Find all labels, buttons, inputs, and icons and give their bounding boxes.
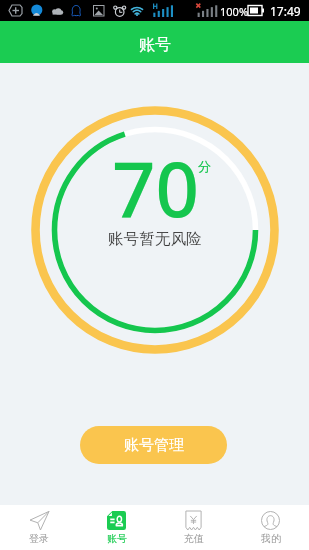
- other: Account: [107, 511, 126, 530]
- button[interactable]: Top up: [155, 505, 232, 550]
- staticText: 账号管理: [124, 436, 184, 455]
- staticText: 充值: [184, 532, 204, 545]
- button[interactable]: 账号管理: [80, 426, 227, 464]
- button[interactable]: Account: [78, 505, 155, 550]
- button[interactable]: Mine: [232, 505, 309, 550]
- staticText: 70: [112, 136, 199, 240]
- button[interactable]: Login: [0, 505, 78, 550]
- staticText: 我的: [261, 532, 281, 545]
- staticText: 账号: [139, 35, 171, 55]
- other: Top up: [184, 511, 203, 530]
- staticText: 登录: [29, 532, 49, 545]
- other: Login: [30, 511, 49, 530]
- staticText: 账号: [107, 532, 127, 545]
- staticText: 100%: [220, 4, 249, 19]
- other: Mine: [261, 511, 280, 530]
- staticText: 17:49: [270, 3, 301, 19]
- staticText: 账号暂无风险: [108, 229, 202, 249]
- staticText: 分: [198, 158, 211, 174]
